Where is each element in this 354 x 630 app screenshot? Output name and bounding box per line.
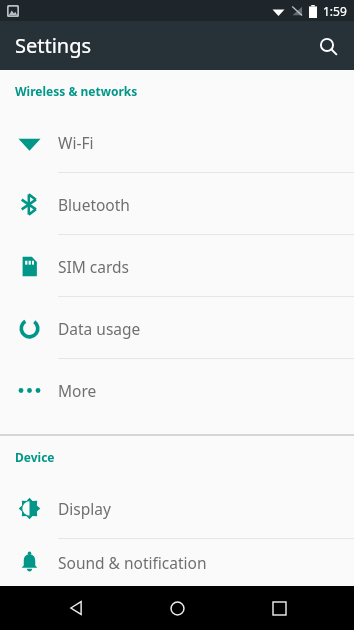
staticText: Bluetooth [58,194,130,215]
button[interactable]: Recent apps [253,586,305,630]
staticText: 1:59 [323,3,347,19]
staticText: Display [58,498,111,519]
staticText: SIM cards [58,256,130,277]
button[interactable]: More [0,359,354,421]
button[interactable]: Back [50,586,102,630]
staticText: More [58,380,97,401]
button[interactable]: Home [151,586,203,630]
button[interactable]: Bluetooth [0,173,354,235]
staticText: Data usage [58,318,141,339]
button[interactable]: Wi-Fi [0,111,354,173]
staticText: Device [15,449,55,465]
button[interactable]: Display [0,477,354,539]
button[interactable]: Data usage [0,297,354,359]
staticText: Wireless & networks [15,83,138,99]
button[interactable]: SIM cards [0,235,354,297]
staticText: Wi-Fi [58,132,94,153]
button[interactable]: Sound & notification [0,539,354,586]
staticText: Settings [15,32,92,59]
staticText: Sound & notification [58,552,207,573]
button[interactable]: Search [306,24,350,68]
